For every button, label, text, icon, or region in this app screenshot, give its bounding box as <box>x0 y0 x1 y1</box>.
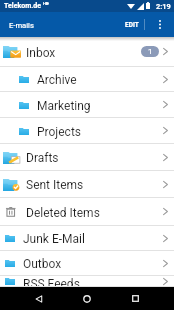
staticText: Deleted Items <box>26 206 100 220</box>
button[interactable]: Recents <box>111 287 159 310</box>
staticText: Sent Items <box>26 178 84 192</box>
button[interactable]: Junk E-Mail <box>0 226 174 251</box>
button[interactable]: Marketing <box>0 92 174 118</box>
button[interactable]: Deleted Items <box>0 198 174 226</box>
staticText: EDIT <box>125 21 139 29</box>
staticText: Marketing <box>37 99 91 113</box>
button[interactable]: Home <box>63 287 111 310</box>
button[interactable]: Drafts <box>0 144 174 171</box>
staticText: Drafts <box>26 151 59 165</box>
staticText: Outbox <box>23 257 62 271</box>
button[interactable]: EDIT <box>120 12 144 37</box>
staticText: 1 <box>148 47 153 56</box>
staticText: E-mails <box>9 21 34 30</box>
staticText: Archive <box>37 73 77 87</box>
staticText: + <box>46 1 49 6</box>
button[interactable]: Outbox <box>0 251 174 276</box>
staticText: Junk E-Mail <box>23 232 85 246</box>
button[interactable]: Archive <box>0 67 174 92</box>
button[interactable]: Projects <box>0 118 174 144</box>
button[interactable]: RSS Feeds <box>0 276 174 287</box>
button[interactable]: Back <box>15 287 63 310</box>
staticText: HD <box>43 1 49 6</box>
staticText: Projects <box>37 125 81 139</box>
button[interactable]: Sent Items <box>0 171 174 198</box>
staticText: 2:19 <box>156 2 171 11</box>
button[interactable]: More options <box>145 12 174 37</box>
staticText: RSS Feeds <box>23 277 80 287</box>
staticText: Telekom.de <box>4 2 41 10</box>
staticText: Inbox <box>26 46 56 60</box>
button[interactable]: Inbox <box>0 37 174 67</box>
